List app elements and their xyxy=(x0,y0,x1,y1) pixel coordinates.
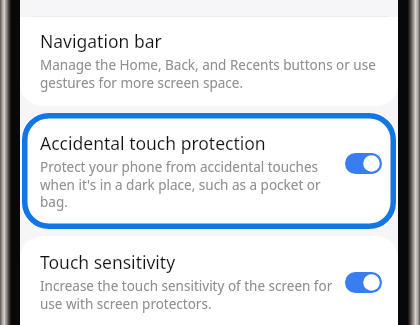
button[interactable]: Touch sensitivity xyxy=(20,236,398,325)
staticText: Touch sensitivity xyxy=(40,250,176,274)
button[interactable]: Toggle on xyxy=(345,272,382,293)
staticText: Manage the Home, Back, and Recents butto… xyxy=(40,56,382,92)
button[interactable]: Navigation bar xyxy=(20,17,398,106)
button[interactable] xyxy=(22,113,396,229)
staticText: Navigation bar xyxy=(40,29,162,53)
button[interactable]: Toggle on xyxy=(345,153,382,174)
staticText: Protect your phone from accidental touch… xyxy=(40,158,335,211)
staticText: Increase the touch sensitivity of the sc… xyxy=(40,277,335,313)
staticText: Accidental touch protection xyxy=(40,131,266,155)
